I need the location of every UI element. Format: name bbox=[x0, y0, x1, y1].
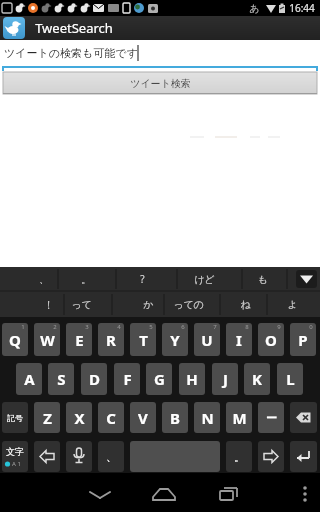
button[interactable]: 記号 bbox=[2, 402, 28, 433]
staticText: 記号 bbox=[7, 413, 23, 423]
staticText: X bbox=[74, 408, 85, 428]
button[interactable] bbox=[139, 473, 189, 512]
staticText: 9 bbox=[277, 323, 281, 331]
staticText: M bbox=[232, 408, 247, 428]
staticText: 3 bbox=[85, 323, 89, 331]
button[interactable]: O bbox=[258, 323, 284, 356]
button[interactable] bbox=[75, 473, 125, 512]
button[interactable]: って bbox=[61, 292, 101, 317]
button[interactable]: E bbox=[66, 323, 92, 356]
staticText: 1 bbox=[21, 323, 25, 331]
staticText: F bbox=[123, 369, 132, 389]
staticText: ? bbox=[140, 272, 145, 286]
staticText: N bbox=[201, 408, 214, 428]
button[interactable]: G bbox=[146, 363, 172, 395]
staticText: ー bbox=[266, 411, 277, 425]
staticText: 文字 bbox=[6, 446, 24, 457]
staticText: TweetSearch bbox=[35, 19, 113, 37]
button[interactable]: P bbox=[290, 323, 316, 356]
staticText: っての bbox=[173, 298, 204, 311]
staticText: K bbox=[252, 369, 262, 389]
staticText: よ bbox=[287, 298, 298, 311]
button[interactable]: A bbox=[16, 363, 42, 395]
button[interactable]: Z bbox=[34, 402, 60, 433]
staticText: ツイートの検索も可能です bbox=[4, 46, 138, 60]
button[interactable]: ! bbox=[28, 292, 68, 317]
staticText: A 1 bbox=[12, 460, 21, 468]
staticText: G bbox=[154, 369, 165, 389]
button[interactable]: ツイート検索 bbox=[3, 72, 317, 94]
staticText: D bbox=[89, 369, 100, 389]
button[interactable]: ー bbox=[258, 402, 284, 433]
staticText: V bbox=[138, 408, 148, 428]
button[interactable]: W bbox=[34, 323, 60, 356]
button[interactable]: K bbox=[244, 363, 270, 395]
button[interactable] bbox=[202, 473, 252, 512]
staticText: 2 bbox=[53, 323, 57, 331]
button[interactable] bbox=[2, 441, 28, 472]
button[interactable]: D bbox=[81, 363, 107, 395]
button[interactable]: T bbox=[130, 323, 156, 356]
button[interactable]: X bbox=[66, 402, 92, 433]
staticText: 、 bbox=[106, 450, 117, 464]
button[interactable]: H bbox=[179, 363, 205, 395]
staticText: Y bbox=[170, 330, 180, 350]
button[interactable]: C bbox=[98, 402, 124, 433]
staticText: W bbox=[40, 330, 55, 350]
button[interactable]: 。 bbox=[226, 441, 252, 472]
staticText: か bbox=[143, 298, 154, 311]
button[interactable]: TweetSearch bbox=[35, 19, 113, 37]
button[interactable]: F bbox=[114, 363, 140, 395]
button[interactable]: ツイートの検索も可能です bbox=[4, 40, 304, 66]
button[interactable]: Y bbox=[162, 323, 188, 356]
staticText: C bbox=[106, 408, 116, 428]
button[interactable] bbox=[296, 270, 317, 288]
staticText: U bbox=[201, 330, 213, 350]
staticText: 0 bbox=[309, 323, 313, 331]
button[interactable] bbox=[258, 441, 284, 472]
staticText: 8 bbox=[245, 323, 249, 331]
button[interactable] bbox=[34, 441, 60, 472]
staticText: H bbox=[186, 369, 198, 389]
staticText: ! bbox=[47, 298, 50, 312]
button[interactable]: B bbox=[162, 402, 188, 433]
button[interactable]: 、 bbox=[98, 441, 124, 472]
button[interactable]: J bbox=[212, 363, 238, 395]
button[interactable] bbox=[290, 441, 317, 472]
button[interactable] bbox=[66, 441, 92, 472]
staticText: 。 bbox=[81, 273, 91, 286]
button[interactable]: 。 bbox=[66, 267, 106, 291]
button[interactable]: L bbox=[277, 363, 303, 395]
staticText: E bbox=[75, 330, 84, 350]
button[interactable]: U bbox=[194, 323, 220, 356]
button[interactable]: よ bbox=[272, 292, 312, 317]
button[interactable]: M bbox=[226, 402, 252, 433]
button[interactable]: I bbox=[226, 323, 252, 356]
staticText: あ bbox=[249, 2, 260, 15]
button[interactable]: N bbox=[194, 402, 220, 433]
button[interactable]: 、 bbox=[24, 267, 64, 291]
staticText: L bbox=[286, 369, 295, 389]
staticText: P bbox=[298, 330, 308, 350]
button[interactable] bbox=[290, 473, 320, 512]
staticText: 6 bbox=[181, 323, 185, 331]
button[interactable]: R bbox=[98, 323, 124, 356]
button[interactable]: ? bbox=[122, 267, 162, 291]
staticText: 4 bbox=[117, 323, 121, 331]
staticText: A bbox=[24, 369, 35, 389]
staticText: 7 bbox=[213, 323, 217, 331]
button[interactable]: ね bbox=[225, 292, 265, 317]
staticText: O bbox=[265, 330, 277, 350]
button[interactable]: V bbox=[130, 402, 156, 433]
button[interactable]: S bbox=[48, 363, 74, 395]
staticText: 。 bbox=[234, 450, 245, 464]
staticText: けど bbox=[194, 273, 215, 286]
button[interactable]: Q bbox=[2, 323, 28, 356]
staticText: 、 bbox=[39, 273, 49, 286]
button[interactable]: っての bbox=[168, 292, 208, 317]
button[interactable] bbox=[290, 402, 317, 433]
button[interactable]: か bbox=[128, 292, 168, 317]
button[interactable]: も bbox=[242, 267, 282, 291]
button[interactable]: けど bbox=[184, 267, 224, 291]
